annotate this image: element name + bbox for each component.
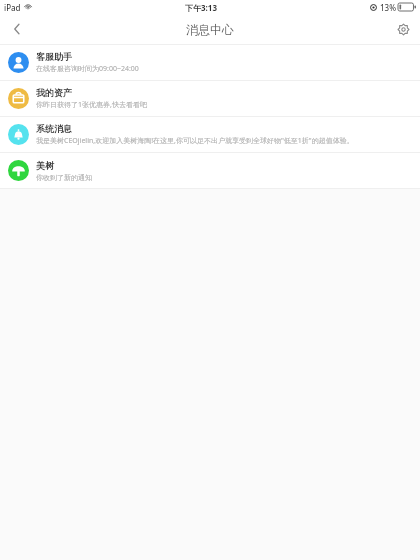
- staticText: 你昨日获得了1张优惠券,快去看看吧: [36, 100, 147, 110]
- button[interactable]: 系统消息: [0, 117, 420, 152]
- staticText: 系统消息: [36, 123, 72, 134]
- staticText: 在线客服咨询时间为09:00~24:00: [36, 64, 139, 74]
- staticText: 消息中心: [186, 22, 234, 37]
- staticText: 你收到了新的通知: [36, 173, 92, 182]
- button[interactable]: 客服助手: [0, 45, 420, 80]
- button[interactable]: Back: [0, 14, 34, 44]
- staticText: 我的资产: [36, 87, 72, 98]
- staticText: 我是美树CEOjielin,欢迎加入美树海陶!在这里,你可以足不出户就享受到全球…: [36, 136, 354, 146]
- button[interactable]: 我的资产: [0, 81, 420, 116]
- staticText: 13%: [380, 2, 396, 13]
- button[interactable]: Settings: [386, 14, 420, 44]
- staticText: 美树: [36, 160, 54, 171]
- staticText: 客服助手: [36, 51, 72, 62]
- staticText: 下午3:13: [185, 2, 217, 13]
- button[interactable]: 美树: [0, 153, 420, 188]
- staticText: iPad: [4, 2, 21, 13]
